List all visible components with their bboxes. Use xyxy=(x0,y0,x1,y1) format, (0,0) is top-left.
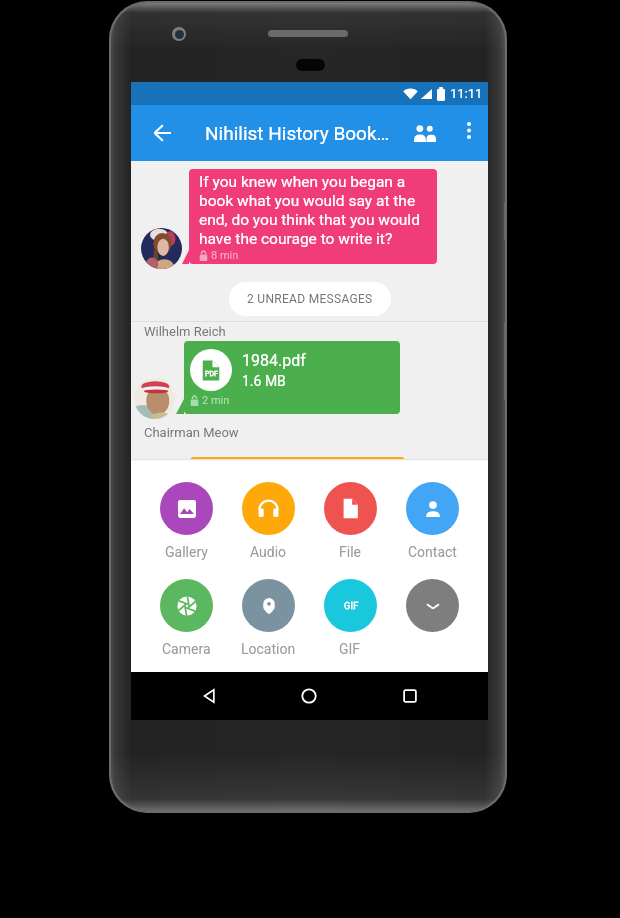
button[interactable]: Audio xyxy=(227,482,309,560)
button[interactable]: PDF xyxy=(184,341,400,414)
staticText: Audio xyxy=(250,544,287,560)
staticText: GIF xyxy=(339,641,361,657)
button[interactable]: GIF xyxy=(309,579,391,657)
staticText: PDF xyxy=(205,370,218,378)
button[interactable]: If you knew when you began a book what y… xyxy=(189,169,437,264)
staticText: File xyxy=(339,544,361,560)
button[interactable]: Camera xyxy=(145,579,227,657)
staticText: Gallery xyxy=(165,544,208,560)
staticText: 11:11 xyxy=(450,86,483,101)
button[interactable]: Gallery xyxy=(145,482,227,560)
staticText: Wilhelm Reich xyxy=(144,324,226,339)
staticText: 2 UNREAD MESSAGES xyxy=(247,292,373,306)
staticText: Nihilist History Book… xyxy=(205,122,390,144)
button[interactable]: Recent apps xyxy=(386,672,434,720)
button[interactable]: Back xyxy=(138,109,186,157)
button[interactable] xyxy=(190,457,405,487)
staticText: Location xyxy=(241,641,296,657)
button[interactable]: More options xyxy=(391,579,473,641)
staticText: Camera xyxy=(162,641,211,657)
staticText: 8 min xyxy=(211,249,239,262)
button[interactable]: File xyxy=(309,482,391,560)
button[interactable]: Back xyxy=(185,672,233,720)
staticText: 2 min xyxy=(202,394,230,407)
staticText: GIF xyxy=(344,601,359,612)
button[interactable]: Contact xyxy=(391,482,473,560)
staticText: 1984.pdf xyxy=(242,351,306,370)
staticText: Chairman Meow xyxy=(144,425,239,440)
button[interactable]: Home xyxy=(285,672,333,720)
staticText: Contact xyxy=(408,544,457,560)
staticText: If you knew when you began a book what y… xyxy=(199,173,427,248)
staticText: 1.6 MB xyxy=(242,373,286,389)
button[interactable]: More options xyxy=(449,110,489,150)
button[interactable]: Location xyxy=(227,579,309,657)
button[interactable]: 2 UNREAD MESSAGES xyxy=(229,282,391,316)
button[interactable]: Group members xyxy=(402,110,448,156)
